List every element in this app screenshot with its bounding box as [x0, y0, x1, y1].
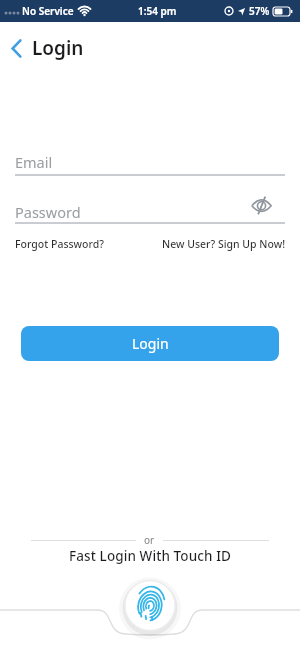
- staticText: Fast Login With Touch ID: [0, 547, 300, 565]
- staticText: Email: [15, 152, 53, 172]
- button[interactable]: [251, 197, 272, 214]
- staticText: Login: [32, 35, 84, 61]
- button[interactable]: Email: [15, 152, 285, 176]
- staticText: or: [144, 533, 155, 547]
- button[interactable]: Password: [15, 202, 300, 224]
- button[interactable]: New User? Sign Up Now!: [162, 237, 286, 251]
- button[interactable]: Login: [21, 326, 279, 361]
- button[interactable]: [0, 569, 300, 649]
- staticText: 1:54 pm: [138, 4, 177, 18]
- staticText: No Service: [22, 4, 74, 18]
- button[interactable]: Forgot Password?: [15, 237, 104, 251]
- staticText: 57%: [249, 4, 270, 18]
- staticText: Password: [15, 202, 251, 222]
- staticText: Login: [132, 334, 169, 353]
- button[interactable]: Login: [10, 35, 300, 61]
